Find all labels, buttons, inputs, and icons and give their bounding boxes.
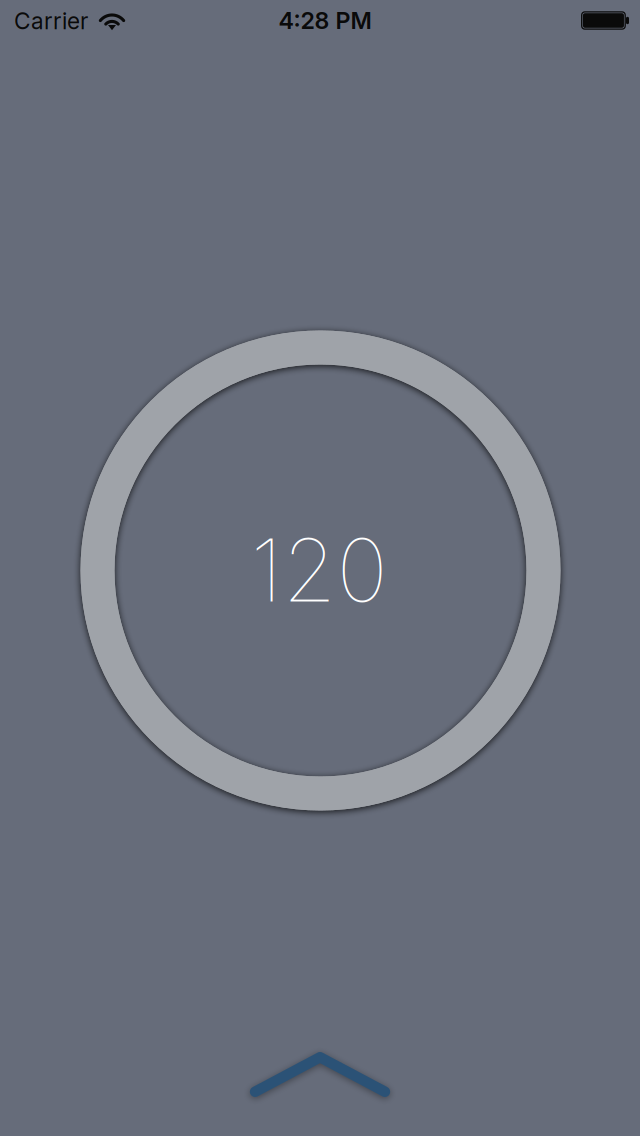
- staticText: 120: [250, 518, 387, 622]
- staticText: 4:28 PM: [278, 6, 371, 35]
- button[interactable]: Expand: [250, 1052, 390, 1097]
- staticText: Carrier: [14, 7, 88, 35]
